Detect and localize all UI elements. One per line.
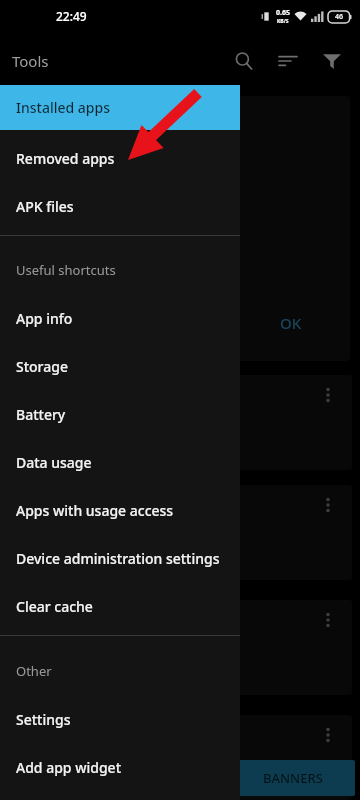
staticText: Removed apps [16,149,115,168]
button[interactable]: More options [312,489,344,521]
staticText: app size: 22 [24,662,96,680]
staticText: Settings [16,710,71,729]
button[interactable]: App name, pack, date [8,600,352,695]
staticText: package, version [24,419,127,437]
button[interactable]: Device administration settings [0,541,240,575]
button[interactable]: More options [312,379,344,411]
staticText: Data usage [16,453,92,472]
staticText: Other [16,662,52,680]
button[interactable]: Add app widget [0,750,240,784]
button[interactable]: APK files [0,189,240,223]
staticText: Storage [16,357,68,376]
button[interactable]: Removed apps [0,141,240,175]
staticText: batch operations [30,256,150,276]
staticText: Battery [16,405,66,424]
staticText: KB/S [277,18,289,25]
staticText: App info [16,309,73,328]
button[interactable]: OK [270,307,312,339]
staticText: App name, pack, date [24,626,157,644]
staticText: App name, date [24,511,121,529]
button[interactable]: App name, date [8,485,352,580]
button[interactable]: Clear cache [0,589,240,623]
button[interactable]: BANNERS [230,760,355,796]
staticText: Clear cache [16,597,93,616]
staticText: Tools [12,51,49,71]
button[interactable]: Apps with usage access [0,493,240,527]
button[interactable]: More options [312,604,344,636]
staticText: Apps with usage access [16,501,174,520]
button[interactable]: App name, manager, [8,375,352,470]
staticText: size: 54 [24,455,69,470]
staticText: OK [280,313,302,333]
button[interactable]: More options [8,715,352,800]
staticText: Allow access to your [30,140,172,160]
button[interactable]: More options [312,719,344,751]
staticText: Useful shortcuts [16,261,116,279]
button[interactable]: Storage [0,349,240,383]
button[interactable]: Sort [266,39,310,83]
staticText: Device administration settings [16,549,220,568]
button[interactable]: Battery [0,397,240,431]
staticText: App name, manager, [24,401,151,419]
staticText: 22:49 [56,8,87,24]
staticText: APK files [16,197,74,216]
staticText: app size: 54 [24,547,96,565]
button[interactable]: Filter [310,39,354,83]
button[interactable]: Search [222,39,266,83]
button[interactable]: App info [0,301,240,335]
button[interactable]: Data usage [0,445,240,479]
button[interactable]: Installed apps [0,85,240,130]
staticText: 0.65 [276,8,290,18]
staticText: Add app widget [16,758,122,777]
staticText: Installed apps [16,98,110,117]
staticText: 46 [335,12,344,22]
button[interactable]: Settings [0,702,240,736]
staticText: BANNERS [263,769,323,787]
staticText: device data in order to [30,188,189,208]
